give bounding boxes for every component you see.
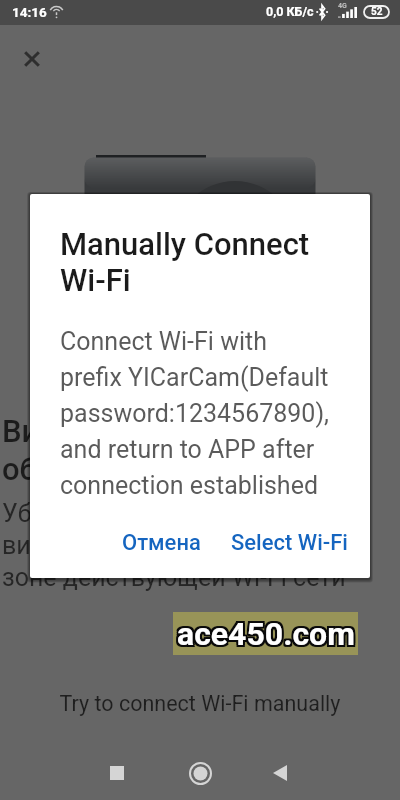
staticText: ace450.com <box>179 617 357 655</box>
staticText: 14:16 <box>12 4 47 20</box>
staticText: ace450.com <box>179 615 357 653</box>
staticText: ace450.com <box>175 617 353 655</box>
staticText: Try to connect Wi-Fi manually <box>0 691 400 716</box>
button[interactable]: Close <box>15 42 49 76</box>
staticText: 4G <box>338 2 347 10</box>
button[interactable]: Back <box>258 751 302 795</box>
button[interactable]: Отмена <box>106 520 217 566</box>
staticText: 0,0 КБ/с <box>266 4 314 19</box>
staticText: Видеорегистратор обнаружен <box>2 413 273 487</box>
button[interactable]: Home <box>178 751 222 795</box>
staticText: ace450.com <box>177 615 355 653</box>
staticText: ace450.com <box>177 613 355 651</box>
staticText: Отмена <box>122 530 201 556</box>
staticText: ace450.com <box>177 617 355 655</box>
staticText: Manually Connect Wi-Fi <box>60 226 310 298</box>
staticText: ace450.com <box>175 615 353 653</box>
staticText: ace450.com <box>175 613 353 651</box>
staticText: 52 <box>371 6 383 18</box>
button[interactable]: Recent apps <box>95 751 139 795</box>
staticText: Select Wi-Fi <box>231 530 348 556</box>
staticText: Убедитесь, что вы видеорегистратор наход… <box>2 499 366 592</box>
button[interactable]: Select Wi-Fi <box>217 520 364 566</box>
staticText: ace450.com <box>179 613 357 651</box>
staticText: Connect Wi-Fi with prefix YICarCam(Defau… <box>60 327 330 500</box>
